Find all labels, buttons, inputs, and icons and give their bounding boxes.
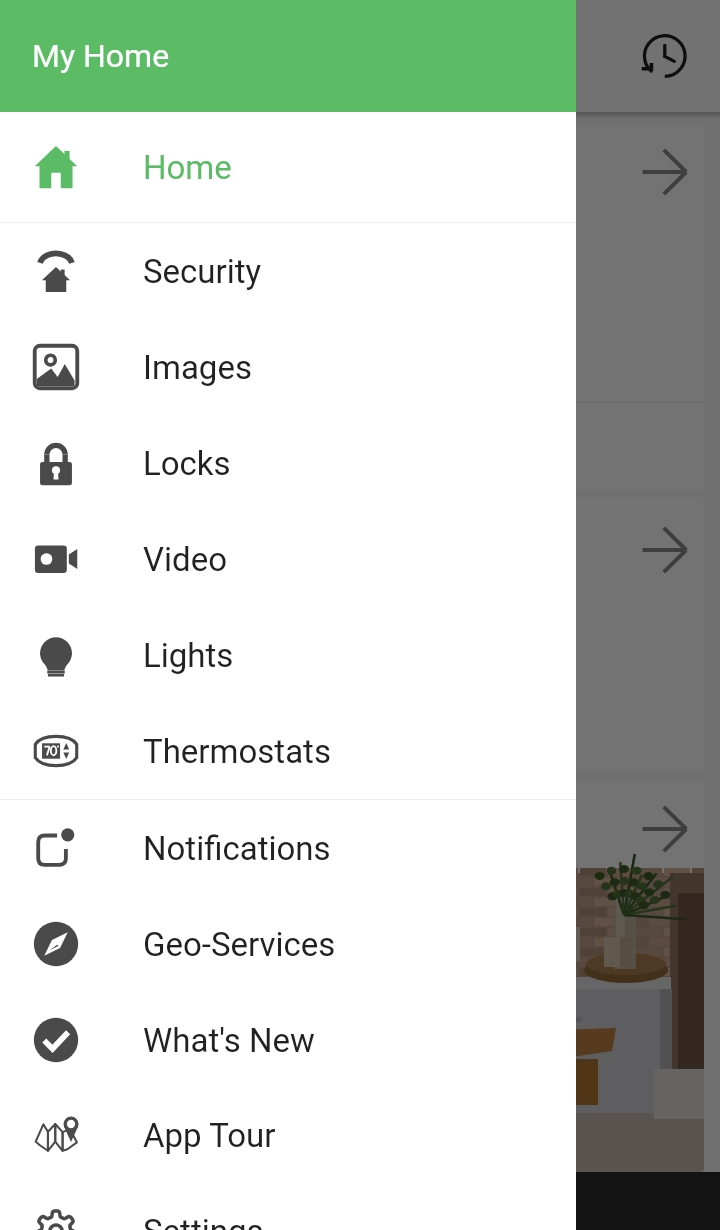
other: Open: [640, 804, 690, 854]
staticText: Thermostats: [143, 732, 331, 771]
button[interactable]: History: [641, 33, 687, 79]
button[interactable]: Notifications: [0, 800, 576, 896]
button[interactable]: Open: [20, 125, 704, 490]
button[interactable]: Locks: [0, 415, 576, 511]
staticText: Locks: [143, 444, 231, 483]
button[interactable]: Settings: [0, 1183, 576, 1230]
staticText: Geo-Services: [143, 925, 336, 964]
staticText: What's New: [143, 1021, 315, 1060]
button[interactable]: Images: [0, 319, 576, 415]
button[interactable]: Geo-Services: [0, 896, 576, 992]
button[interactable]: Open: [20, 782, 704, 1172]
staticText: App Tour: [143, 1116, 276, 1155]
staticText: Security: [143, 252, 262, 291]
button[interactable]: Lights: [0, 607, 576, 703]
button[interactable]: App Tour: [0, 1087, 576, 1183]
button[interactable]: Thermostats: [0, 703, 576, 799]
staticText: Settings: [143, 1212, 264, 1230]
staticText: Lights: [143, 636, 234, 675]
staticText: My Home: [32, 37, 170, 75]
button[interactable]: Home: [0, 112, 576, 222]
button[interactable]: Open: [20, 497, 704, 770]
button[interactable]: Security: [0, 223, 576, 319]
button[interactable]: Video: [0, 511, 576, 607]
button[interactable]: What's New: [0, 992, 576, 1088]
button[interactable]: My Home: [0, 0, 576, 112]
staticText: Video: [143, 540, 227, 579]
staticText: Notifications: [143, 829, 331, 868]
other: Open: [640, 525, 690, 575]
staticText: Images: [143, 348, 252, 387]
other: Open: [640, 147, 690, 197]
staticText: Home: [143, 148, 232, 187]
